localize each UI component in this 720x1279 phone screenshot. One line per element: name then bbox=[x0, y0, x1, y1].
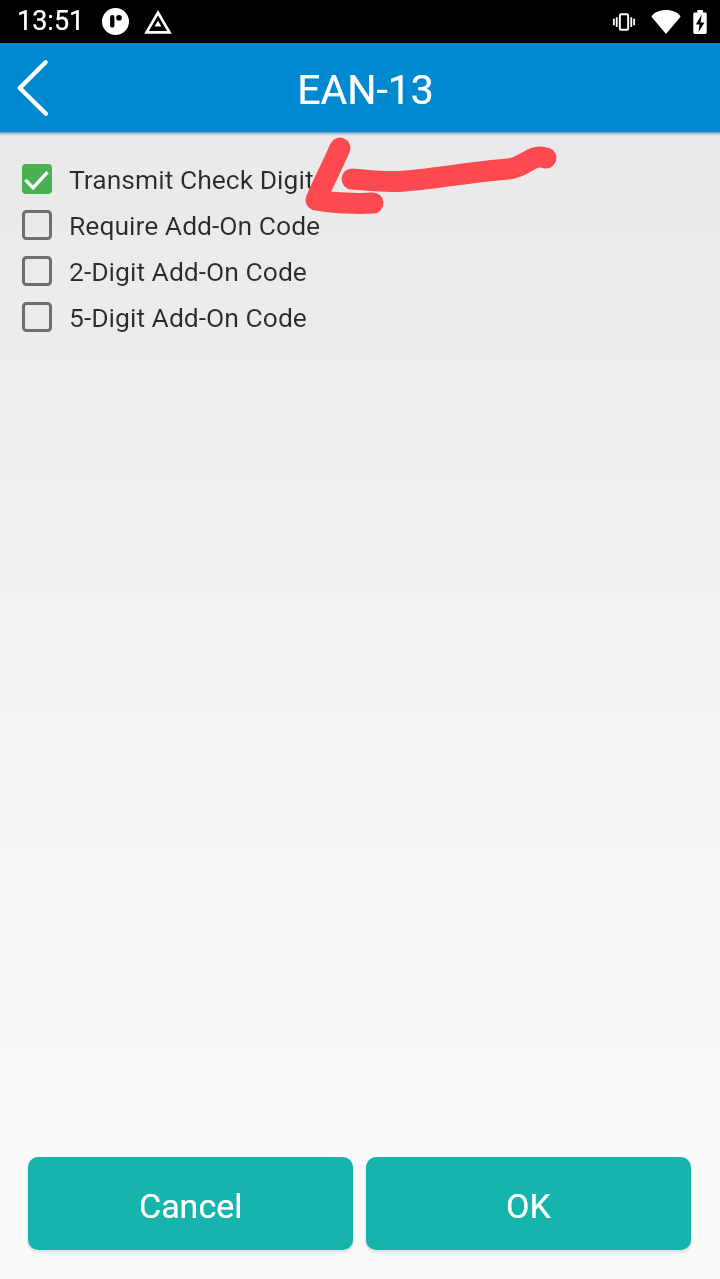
staticText: Require Add-On Code bbox=[69, 210, 321, 241]
button[interactable]: Back bbox=[0, 43, 66, 132]
staticText: Cancel bbox=[139, 1186, 243, 1226]
staticText: EAN-13 bbox=[297, 66, 434, 114]
staticText: 5-Digit Add-On Code bbox=[69, 302, 307, 333]
button[interactable]: 2-Digit Add-On Code bbox=[0, 248, 720, 294]
staticText: OK bbox=[506, 1186, 551, 1226]
button[interactable]: 5-Digit Add-On Code bbox=[0, 294, 720, 340]
button[interactable]: Cancel bbox=[28, 1157, 353, 1250]
button[interactable]: Transmit Check Digit bbox=[0, 156, 720, 202]
staticText: Transmit Check Digit bbox=[69, 164, 314, 195]
button[interactable]: Require Add-On Code bbox=[0, 202, 720, 248]
button[interactable]: OK bbox=[366, 1157, 691, 1250]
staticText: 13:51 bbox=[17, 5, 85, 37]
staticText: 2-Digit Add-On Code bbox=[69, 256, 307, 287]
